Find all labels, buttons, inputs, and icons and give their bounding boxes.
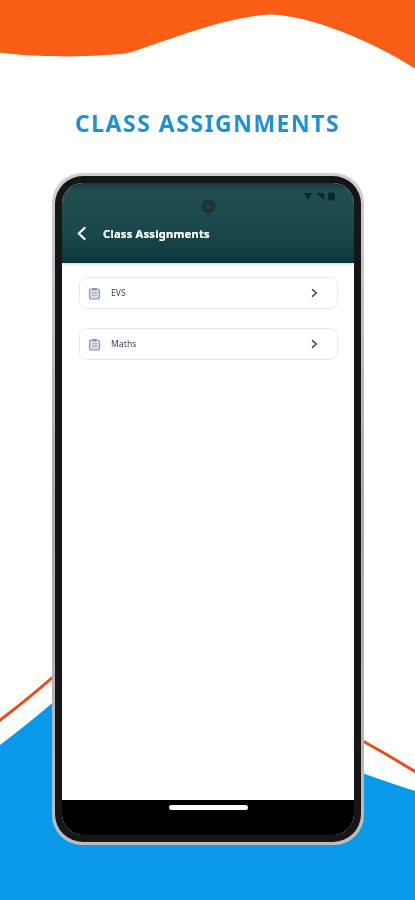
button[interactable] (68, 218, 94, 248)
button[interactable]: Maths (79, 328, 338, 360)
staticText: EVS (111, 287, 126, 299)
staticText: Maths (111, 338, 137, 350)
staticText: CLASS ASSIGNMENTS (75, 107, 341, 138)
button[interactable]: EVS (79, 277, 338, 309)
staticText: Class Assignments (103, 226, 210, 241)
